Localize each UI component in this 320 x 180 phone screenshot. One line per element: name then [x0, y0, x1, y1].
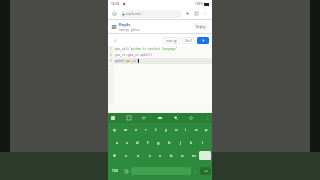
button[interactable]: n	[177, 149, 188, 162]
button[interactable]: Menu	[111, 24, 117, 30]
staticText: s	[126, 140, 128, 145]
staticText: g	[157, 140, 160, 145]
staticText: n	[181, 153, 184, 158]
staticText: 1	[110, 47, 112, 51]
button[interactable]: Keyboard tool 7	[204, 115, 210, 121]
button[interactable]: k	[186, 136, 197, 149]
button[interactable]: w	[120, 123, 131, 136]
button[interactable]: Shift	[109, 149, 120, 162]
button[interactable]: c	[144, 149, 155, 162]
button[interactable]: ?123	[109, 163, 121, 179]
staticText: d	[136, 140, 139, 145]
button[interactable]: Shell	[182, 37, 195, 44]
staticText: replit.com	[126, 12, 141, 16]
button[interactable]: Deploy	[193, 23, 209, 30]
button[interactable]: d	[132, 136, 142, 149]
staticText: 100%	[195, 2, 203, 6]
button[interactable]: f	[142, 136, 153, 149]
staticText: 10:14	[111, 2, 120, 6]
staticText: print	[115, 59, 124, 63]
button[interactable]: More options	[201, 9, 210, 18]
staticText: Shell	[185, 39, 192, 43]
staticText: x	[137, 153, 140, 158]
button[interactable]: replit.com	[120, 10, 182, 18]
staticText: r	[145, 127, 147, 132]
button[interactable]: m	[188, 149, 199, 162]
button[interactable]: j	[175, 136, 186, 149]
staticText: p	[205, 127, 208, 132]
staticText: main.py	[166, 39, 177, 43]
staticText: i	[185, 127, 187, 132]
button[interactable]: Keyboard tool 1	[110, 115, 116, 121]
button[interactable]: New tab	[183, 9, 192, 18]
button[interactable]: Home	[110, 9, 119, 18]
button[interactable]: Run	[197, 37, 209, 44]
staticText: m	[192, 153, 196, 158]
button[interactable]: h	[164, 136, 175, 149]
staticText: z	[125, 153, 127, 158]
button[interactable]: v	[155, 149, 166, 162]
button[interactable]: Back	[111, 36, 120, 45]
staticText: f	[147, 140, 149, 145]
staticText: c	[149, 153, 151, 158]
staticText: e	[135, 127, 138, 132]
staticText: o	[195, 127, 198, 132]
button[interactable]: Tabs	[192, 9, 201, 18]
staticText: u	[175, 127, 178, 132]
button[interactable]: Emoji	[121, 163, 131, 179]
staticText: q	[113, 127, 116, 132]
button[interactable]: t	[151, 123, 161, 136]
staticText: "python is easiest language"	[129, 47, 178, 51]
staticText: Deploy	[196, 25, 206, 29]
staticText: 3	[110, 59, 112, 63]
button[interactable]: b	[166, 149, 177, 162]
button[interactable]: Keyboard tool 4	[157, 115, 163, 121]
button[interactable]: x	[132, 149, 144, 162]
staticText: gws_st.split()	[128, 53, 153, 57]
button[interactable]: Keyboard tool 5	[173, 115, 179, 121]
staticText: l	[202, 140, 204, 145]
staticText: ?123	[112, 169, 119, 173]
staticText: gws_url=	[115, 47, 129, 51]
button[interactable]: u	[171, 123, 181, 136]
staticText: j	[180, 140, 182, 145]
staticText: a	[116, 140, 119, 145]
button[interactable]: Enter	[200, 167, 211, 175]
button[interactable]: Period	[191, 163, 200, 179]
staticText: 2	[110, 53, 112, 57]
button[interactable]: r	[141, 123, 151, 136]
button[interactable]: main.py	[163, 37, 180, 44]
staticText: gws_st	[115, 53, 126, 57]
staticText: k	[190, 140, 193, 145]
button[interactable]: Keyboard tool 3	[141, 115, 147, 121]
button[interactable]: i	[181, 123, 191, 136]
staticText: (gws_st)	[124, 59, 138, 63]
button[interactable]: e	[131, 123, 141, 136]
staticText: h	[168, 140, 171, 145]
button[interactable]: p	[201, 123, 211, 136]
button[interactable]: o	[191, 123, 201, 136]
button[interactable]: a	[112, 136, 122, 149]
staticText: b	[170, 153, 173, 158]
button[interactable]: z	[120, 149, 132, 162]
staticText: w	[124, 127, 128, 132]
button[interactable]: l	[197, 136, 208, 149]
staticText: y	[165, 127, 168, 132]
button[interactable]: q	[109, 123, 120, 136]
button[interactable]: y	[161, 123, 171, 136]
staticText: Repls	[119, 22, 131, 28]
button[interactable]: g	[153, 136, 164, 149]
button[interactable]: Keyboard tool 2	[126, 115, 132, 121]
staticText: =	[126, 53, 128, 57]
staticText: v	[159, 153, 162, 158]
staticText: t	[155, 127, 157, 132]
button[interactable]: Backspace	[199, 151, 211, 160]
staticText: main.py · python	[119, 28, 140, 32]
button[interactable]: Keyboard tool 6	[188, 115, 194, 121]
button[interactable]: s	[122, 136, 132, 149]
